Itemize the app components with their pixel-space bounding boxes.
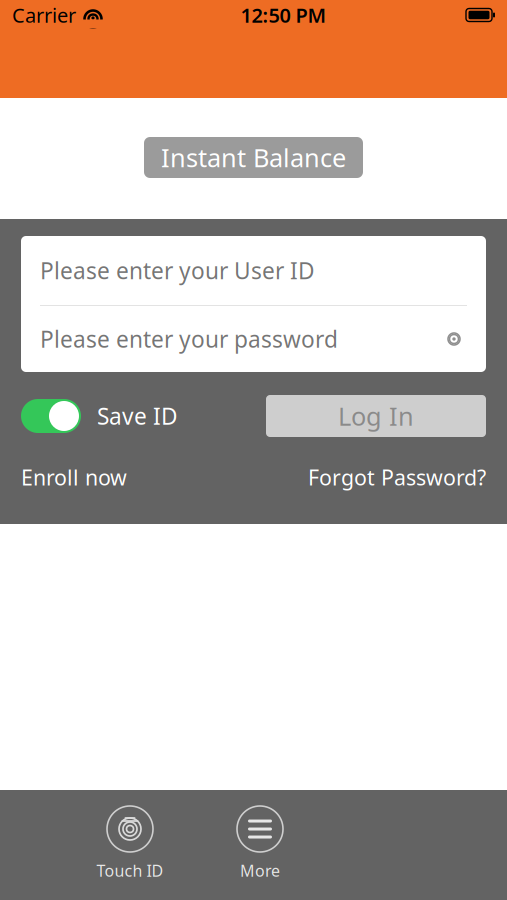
button[interactable]: Enroll now bbox=[21, 463, 127, 491]
staticText: Log In bbox=[338, 399, 414, 433]
staticText: Save ID bbox=[97, 401, 178, 431]
button[interactable]: Log In bbox=[266, 395, 486, 437]
staticText: 12:50 PM bbox=[240, 2, 326, 28]
button[interactable]: Show password bbox=[441, 326, 467, 352]
staticText: More bbox=[240, 860, 280, 881]
staticText: Touch ID bbox=[96, 860, 163, 881]
button[interactable]: Please enter your User ID bbox=[21, 236, 486, 305]
button[interactable]: Forgot Password? bbox=[308, 463, 486, 491]
staticText: Forgot Password? bbox=[308, 463, 486, 491]
button[interactable]: Save ID bbox=[21, 399, 178, 433]
button[interactable]: More bbox=[195, 806, 325, 881]
button[interactable]: Please enter your password bbox=[40, 306, 441, 372]
staticText: Instant Balance bbox=[161, 141, 346, 174]
button[interactable]: Touch ID bbox=[65, 806, 195, 881]
button[interactable]: Instant Balance bbox=[144, 137, 363, 178]
staticText: Please enter your User ID bbox=[40, 255, 315, 285]
staticText: Enroll now bbox=[21, 463, 127, 491]
staticText: Carrier bbox=[12, 2, 76, 28]
staticText: Please enter your password bbox=[40, 324, 338, 354]
